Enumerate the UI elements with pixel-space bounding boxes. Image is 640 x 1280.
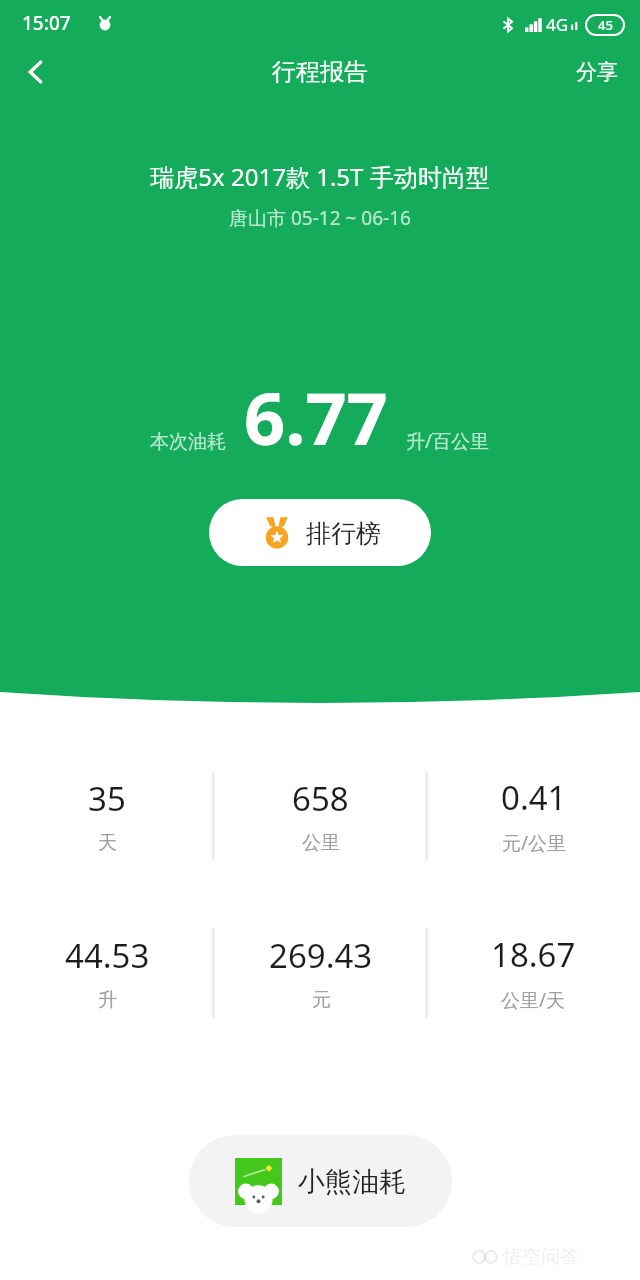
staticText: 元 (312, 988, 331, 1012)
staticText: 本次油耗 (150, 430, 226, 454)
staticText: 6.77 (244, 368, 388, 466)
button[interactable]: 小熊油耗 (189, 1135, 452, 1227)
staticText: 公里/天 (501, 987, 566, 1013)
staticText: 分享 (576, 59, 618, 85)
staticText: 瑞虎5x 2017款 1.5T 手动时尚型 (150, 160, 490, 193)
staticText: 0.41 (501, 775, 567, 820)
staticText: 小熊油耗 (298, 1165, 406, 1199)
staticText: 44.53 (65, 933, 150, 978)
staticText: 45 (598, 16, 613, 34)
staticText: 唐山市 05-12 ~ 06-16 (229, 205, 411, 231)
staticText: 排行榜 (306, 518, 381, 549)
staticText: 升/百公里 (406, 428, 490, 454)
button[interactable]: 分享 (564, 51, 630, 93)
button[interactable]: 排行榜 (209, 499, 431, 566)
staticText: 18.67 (491, 932, 576, 977)
staticText: 658 (292, 776, 349, 821)
staticText: 35 (88, 776, 126, 821)
staticText: 行程报告 (272, 57, 368, 87)
staticText: 元/公里 (502, 830, 567, 856)
staticText: 悟空问答 (503, 1245, 579, 1269)
button[interactable]: Back (8, 48, 64, 96)
staticText: 269.43 (269, 933, 373, 978)
staticText: 升 (98, 988, 117, 1012)
staticText: 4G (546, 13, 569, 36)
staticText: 公里 (302, 831, 340, 855)
staticText: 天 (98, 831, 117, 855)
staticText: 15:07 (22, 10, 71, 36)
